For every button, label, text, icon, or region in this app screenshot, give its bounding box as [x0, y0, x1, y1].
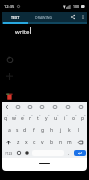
button[interactable]: DRAWING	[28, 12, 59, 22]
staticText: b	[50, 139, 54, 146]
staticText: q	[4, 115, 8, 122]
staticText: s	[16, 127, 19, 134]
staticText: z	[17, 139, 20, 146]
button[interactable]: Enter	[74, 150, 86, 156]
button[interactable]: Sticker	[36, 102, 48, 112]
button[interactable]: ?123	[2, 148, 15, 158]
staticText: TEXT	[11, 15, 20, 20]
button[interactable]: i	[60, 112, 69, 124]
staticText: f	[33, 127, 35, 134]
button[interactable]: g	[38, 124, 47, 136]
staticText: x	[25, 139, 28, 146]
button[interactable]: v	[38, 136, 47, 148]
button[interactable]: Emoji	[15, 148, 23, 158]
staticText: u	[54, 115, 58, 122]
button[interactable]: More	[74, 102, 87, 112]
button[interactable]: x	[22, 136, 30, 148]
staticText: 8	[66, 113, 68, 116]
button[interactable]: Back	[2, 102, 12, 112]
button[interactable]: Backspace	[74, 136, 87, 148]
staticText: 100	[73, 4, 80, 9]
staticText: i	[64, 115, 66, 122]
button[interactable]: h	[47, 124, 56, 136]
button[interactable]: f	[29, 124, 38, 136]
staticText: j	[60, 127, 62, 134]
staticText: p	[81, 115, 85, 122]
button[interactable]: e	[18, 112, 26, 124]
staticText: w	[12, 115, 16, 122]
staticText: m	[67, 139, 72, 146]
staticText: write	[15, 28, 30, 36]
button[interactable]: n	[56, 136, 65, 148]
button[interactable]: c	[30, 136, 38, 148]
button[interactable]: More options	[78, 12, 87, 22]
staticText: r	[29, 115, 32, 122]
staticText: 2	[15, 113, 17, 116]
button[interactable]: s	[13, 124, 21, 136]
button[interactable]: b	[47, 136, 56, 148]
staticText: 5	[39, 113, 41, 116]
staticText: 6	[48, 113, 50, 116]
button[interactable]: t	[34, 112, 42, 124]
staticText: 12:35	[4, 4, 15, 9]
staticText: 9	[75, 113, 77, 116]
button[interactable]: Format	[3, 70, 16, 83]
button[interactable]: w	[10, 112, 18, 124]
staticText: 4	[31, 113, 33, 116]
staticText: t	[37, 115, 39, 122]
staticText: c	[33, 139, 36, 146]
staticText: k	[68, 127, 71, 134]
button[interactable]: Delete	[3, 90, 16, 102]
staticText: a	[8, 127, 11, 134]
button[interactable]: j	[56, 124, 65, 136]
staticText: o	[72, 115, 76, 122]
button[interactable]: m	[65, 136, 74, 148]
staticText: n	[59, 139, 63, 146]
button[interactable]: z	[14, 136, 22, 148]
staticText: d	[23, 127, 27, 134]
button[interactable]: Translate	[61, 102, 74, 112]
staticText: g	[41, 127, 45, 134]
button[interactable]: Settings	[12, 102, 24, 112]
staticText: l	[78, 127, 80, 134]
button[interactable]: TEXT	[2, 12, 28, 22]
button[interactable]: q	[2, 112, 10, 124]
staticText: ?123	[5, 151, 13, 156]
button[interactable]: o	[69, 112, 78, 124]
button[interactable]: u	[51, 112, 60, 124]
staticText: v	[41, 139, 44, 146]
staticText: h	[50, 127, 54, 134]
button[interactable]: a	[5, 124, 13, 136]
button[interactable]: l	[74, 124, 83, 136]
button[interactable]: d	[21, 124, 29, 136]
button[interactable]: Shift	[2, 136, 14, 148]
staticText: 7	[57, 113, 59, 116]
staticText: y	[45, 115, 48, 122]
button[interactable]: Language	[23, 148, 31, 158]
staticText: DRAWING	[35, 15, 53, 20]
staticText: 1	[7, 113, 9, 116]
staticText: e	[21, 115, 24, 122]
button[interactable]: Share	[67, 12, 78, 22]
button[interactable]: Clipboard	[24, 102, 36, 112]
button[interactable]: k	[65, 124, 74, 136]
button[interactable]: p	[78, 112, 87, 124]
staticText: 0	[84, 113, 86, 116]
staticText: 3	[23, 113, 25, 116]
button[interactable]: y	[42, 112, 51, 124]
button[interactable]: r	[26, 112, 34, 124]
button[interactable]: Undo	[3, 53, 16, 66]
button[interactable]: .	[65, 148, 73, 158]
staticText: .	[68, 150, 70, 157]
button[interactable]: GIF	[48, 102, 61, 112]
